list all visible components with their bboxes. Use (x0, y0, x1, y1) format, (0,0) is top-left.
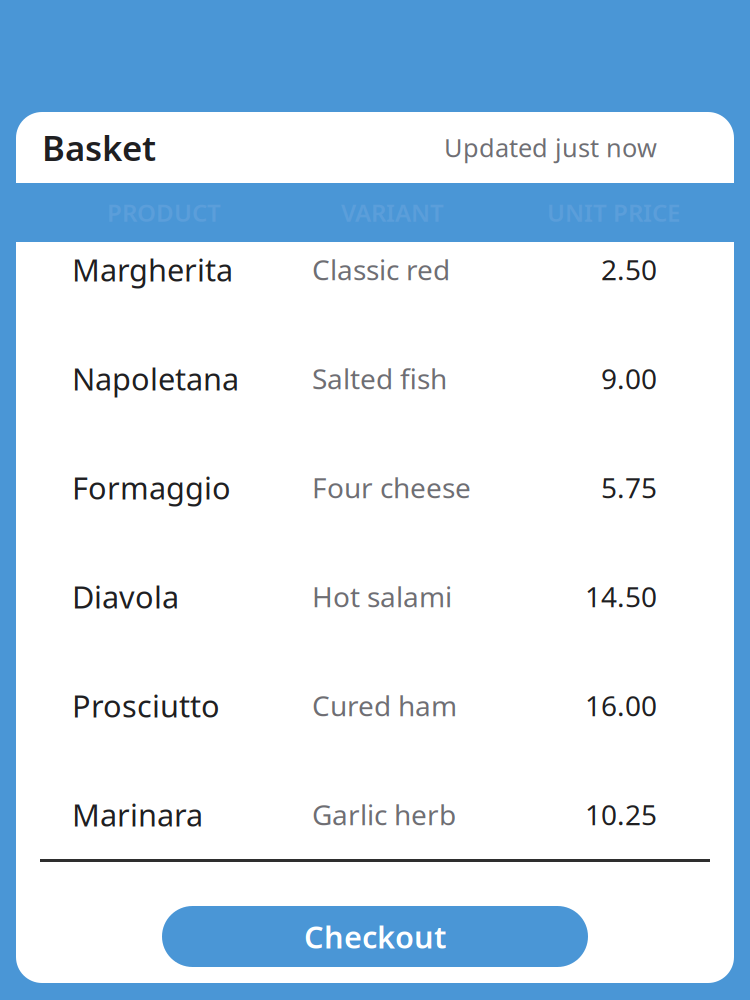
staticText: 10.25 (585, 796, 657, 833)
staticText: Cured ham (312, 687, 457, 724)
staticText: Salted fish (312, 360, 447, 397)
button[interactable]: Napoletana (16, 324, 734, 433)
staticText: 16.00 (585, 687, 657, 724)
staticText: VARIANT (341, 197, 444, 228)
staticText: 5.75 (601, 469, 657, 506)
staticText: Diavola (72, 576, 179, 617)
staticText: Formaggio (72, 467, 231, 508)
staticText: PRODUCT (107, 197, 221, 228)
staticText: Hot salami (312, 578, 452, 615)
button[interactable]: Formaggio (16, 433, 734, 542)
staticText: Prosciutto (72, 685, 220, 726)
staticText: Margherita (72, 249, 233, 290)
button[interactable]: Marinara (16, 760, 734, 869)
staticText: Classic red (312, 251, 450, 288)
staticText: Checkout (304, 916, 446, 957)
staticText: Four cheese (312, 469, 471, 506)
button[interactable]: Diavola (16, 542, 734, 651)
staticText: Marinara (72, 794, 203, 835)
button[interactable]: Prosciutto (16, 651, 734, 760)
staticText: 14.50 (585, 578, 657, 615)
button[interactable]: Margherita (16, 215, 734, 324)
staticText: Updated just now (444, 131, 657, 164)
staticText: Basket (42, 124, 156, 170)
staticText: Napoletana (72, 358, 239, 399)
staticText: UNIT PRICE (547, 197, 680, 228)
staticText: 2.50 (601, 251, 657, 288)
staticText: Garlic herb (312, 796, 456, 833)
staticText: 9.00 (601, 360, 657, 397)
button[interactable]: Checkout (162, 906, 588, 967)
